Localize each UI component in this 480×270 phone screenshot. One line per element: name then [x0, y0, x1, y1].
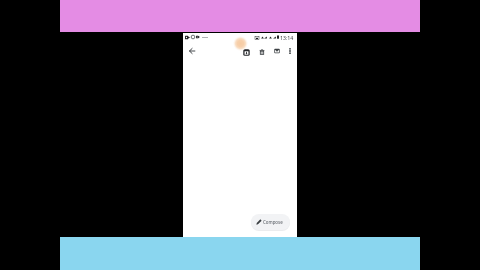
staticText: Compose — [263, 219, 283, 225]
button[interactable]: More options — [284, 45, 296, 57]
staticText: 13:14 — [280, 34, 294, 41]
button[interactable]: Archive — [240, 46, 252, 58]
button[interactable]: Compose — [251, 214, 290, 230]
button[interactable]: Back — [186, 45, 198, 57]
button[interactable]: Delete — [256, 46, 268, 58]
button[interactable]: Mark unread — [271, 45, 283, 57]
